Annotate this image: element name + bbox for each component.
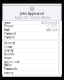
- button[interactable]: Phone: [2, 25, 62, 28]
- staticText: Display: [4, 49, 13, 52]
- button[interactable]: Payment: [2, 36, 62, 39]
- staticText: +1 555: [46, 25, 57, 28]
- staticText: Sounds: [4, 52, 14, 56]
- staticText: Battery: [4, 71, 13, 74]
- button[interactable]: Display: [2, 49, 62, 52]
- button[interactable]: Battery: [2, 71, 62, 74]
- button[interactable]: Privacy: [2, 45, 62, 49]
- staticText: John Appleseed: [20, 12, 44, 15]
- button[interactable]: Email: [2, 28, 62, 32]
- staticText: Apple ID, iCloud, Media: [14, 16, 49, 19]
- staticText: Name: [4, 21, 11, 24]
- button[interactable]: Name: [2, 21, 62, 24]
- button[interactable]: Password: [2, 32, 62, 35]
- button[interactable]: Sounds: [2, 52, 62, 56]
- staticText: a@b.com: [46, 28, 57, 32]
- staticText: General: [4, 41, 15, 45]
- staticText: Password: [4, 32, 16, 35]
- button[interactable]: Screen Time: [2, 60, 62, 63]
- staticText: Wallet: [4, 64, 12, 67]
- button[interactable]: Wallet: [2, 64, 62, 67]
- staticText: Focus: [4, 56, 11, 60]
- staticText: Payment: [4, 36, 15, 39]
- staticText: Email: [4, 28, 10, 32]
- button[interactable]: Passwords: [2, 67, 62, 71]
- button[interactable]: General: [2, 41, 62, 45]
- staticText: Phone: [4, 25, 14, 28]
- staticText: Privacy: [4, 45, 12, 49]
- staticText: Screen Time: [4, 60, 20, 63]
- button[interactable]: Focus: [2, 56, 62, 60]
- staticText: Passwords: [4, 67, 17, 71]
- staticText: Appleseed: [41, 21, 57, 24]
